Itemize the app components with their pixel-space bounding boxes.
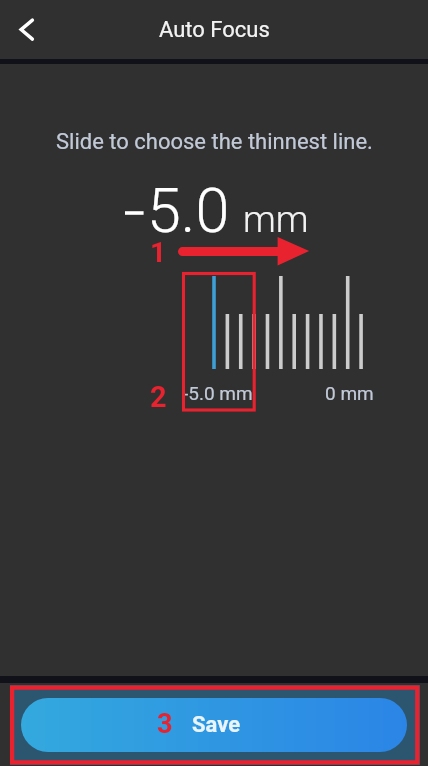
button[interactable]: 3 <box>21 698 407 752</box>
staticText: mm <box>243 198 309 241</box>
staticText: 2 <box>150 380 167 414</box>
button[interactable]: Back <box>0 2 56 58</box>
staticText: 0 mm <box>325 382 374 404</box>
staticText: Slide to choose the thinnest line. <box>56 129 373 155</box>
staticText: 5.0 <box>147 175 230 246</box>
staticText: -5.0 mm <box>183 382 253 404</box>
staticText: 1 <box>150 236 167 269</box>
staticText: 3 <box>157 708 173 740</box>
staticText: Auto Focus <box>159 17 270 43</box>
staticText: Save <box>192 712 241 738</box>
